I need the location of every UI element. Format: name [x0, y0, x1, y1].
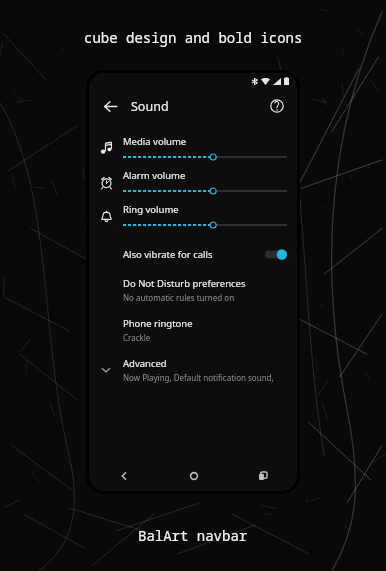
button[interactable]: Ring volume: [89, 199, 297, 233]
button[interactable]: Media volume: [89, 131, 297, 165]
staticText: Crackle: [123, 332, 151, 343]
staticText: Ring volume: [123, 203, 179, 216]
staticText: BalArt navbar: [138, 526, 248, 545]
button[interactable]: Help: [263, 92, 291, 120]
staticText: cube design and bold icons: [84, 28, 303, 47]
staticText: No automatic rules turned on: [123, 292, 235, 303]
staticText: Alarm volume: [123, 169, 186, 182]
button[interactable]: Do Not Disturb preferences: [89, 269, 297, 309]
button[interactable]: Volume slider: [123, 187, 287, 195]
button[interactable]: Also vibrate for calls: [89, 239, 297, 269]
button[interactable]: Back: [89, 461, 159, 491]
staticText: Do Not Disturb preferences: [123, 277, 246, 290]
button[interactable]: Recent apps: [228, 461, 297, 491]
staticText: Also vibrate for calls: [123, 248, 213, 261]
staticText: Sound: [131, 98, 169, 115]
staticText: Phone ringtone: [123, 317, 193, 330]
button[interactable]: Volume slider: [123, 221, 287, 229]
button[interactable]: Home: [159, 461, 228, 491]
staticText: Now Playing, Default notification sound,…: [123, 372, 287, 383]
staticText: Media volume: [123, 135, 187, 148]
button[interactable]: Volume slider: [123, 153, 287, 161]
button[interactable]: Back: [95, 91, 125, 121]
button[interactable]: Alarm volume: [89, 165, 297, 199]
button[interactable]: Also vibrate for calls toggle: [265, 249, 287, 260]
button[interactable]: Advanced: [89, 349, 297, 389]
button[interactable]: Phone ringtone: [89, 309, 297, 349]
staticText: Advanced: [123, 357, 167, 370]
